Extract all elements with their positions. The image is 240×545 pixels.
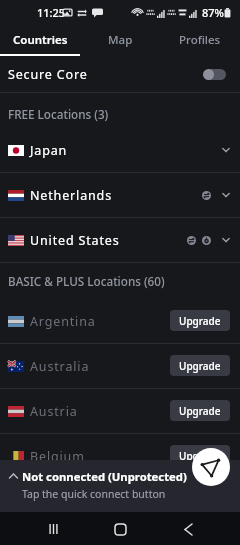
button[interactable]: Australia xyxy=(0,344,240,388)
button[interactable]: Home xyxy=(105,514,135,544)
staticText: 11:25 xyxy=(37,5,66,20)
button[interactable]: Upgrade xyxy=(170,355,230,376)
button[interactable]: Upgrade xyxy=(170,310,230,331)
button[interactable]: Japan xyxy=(0,128,240,172)
staticText: Not connected (Unprotected) xyxy=(22,469,187,484)
staticText: FREE Locations (3) xyxy=(8,106,109,122)
button[interactable]: Countries xyxy=(0,25,80,56)
staticText: 87% xyxy=(202,5,224,20)
staticText: Tap the quick connect button xyxy=(22,487,166,501)
staticText: Japan xyxy=(30,142,68,159)
staticText: Upgrade xyxy=(179,449,221,463)
button[interactable]: Belgium xyxy=(0,434,240,478)
button[interactable]: Upgrade xyxy=(170,400,230,421)
button[interactable]: Map xyxy=(80,25,160,56)
button[interactable]: Profiles xyxy=(160,25,240,56)
button[interactable]: Quick connect xyxy=(192,448,230,486)
button[interactable]: Argentina xyxy=(0,299,240,343)
staticText: Countries xyxy=(13,32,68,48)
button[interactable]: Netherlands xyxy=(0,173,240,217)
staticText: BASIC & PLUS Locations (60) xyxy=(8,273,165,289)
button[interactable]: Upgrade xyxy=(170,445,230,466)
button[interactable]: United States xyxy=(0,218,240,262)
button[interactable]: Secure Core xyxy=(0,56,240,92)
button[interactable]: Recents xyxy=(38,514,68,544)
staticText: Argentina xyxy=(30,313,96,330)
staticText: Belgium xyxy=(30,448,85,465)
staticText: Profiles xyxy=(179,32,221,48)
staticText: Secure Core xyxy=(8,66,88,83)
button[interactable]: Back xyxy=(173,514,203,544)
button[interactable]: Not connected (Unprotected) xyxy=(0,460,240,512)
staticText: Netherlands xyxy=(30,187,112,204)
staticText: Upgrade xyxy=(179,404,221,418)
staticText: United States xyxy=(30,232,120,249)
staticText: Austria xyxy=(30,403,78,420)
staticText: Australia xyxy=(30,358,90,375)
staticText: Upgrade xyxy=(179,314,221,328)
button[interactable]: Austria xyxy=(0,389,240,433)
staticText: Map xyxy=(108,32,133,48)
staticText: Upgrade xyxy=(179,359,221,373)
